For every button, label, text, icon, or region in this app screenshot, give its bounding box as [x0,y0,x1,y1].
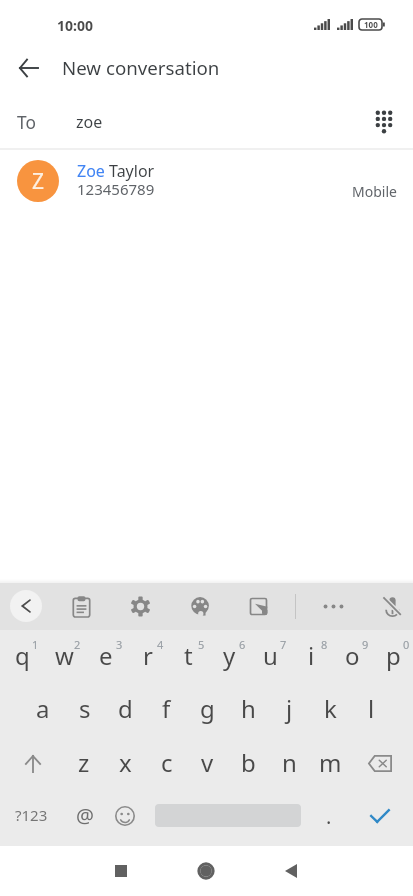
button[interactable]: Themes [183,589,217,623]
button[interactable]: Close keyboard tools [10,590,42,622]
button[interactable]: Z [0,150,413,211]
button[interactable]: b [228,738,269,792]
button[interactable]: a [22,684,64,738]
staticText: To [17,111,36,135]
staticText: 0 [403,637,410,652]
staticText: k [324,692,337,725]
button[interactable]: Back [269,849,313,893]
button[interactable]: To [0,96,413,148]
button[interactable]: g [187,684,228,738]
staticText: r [143,639,153,672]
button[interactable]: c [146,738,187,792]
button[interactable]: @ [65,792,107,846]
button[interactable]: q [0,630,42,684]
button[interactable]: z [63,738,105,792]
staticText: u [263,639,278,672]
staticText: b [241,746,256,779]
button[interactable]: o [331,630,372,684]
button[interactable]: h [228,684,269,738]
staticText: q [15,639,30,672]
staticText: 3 [116,637,123,652]
staticText: l [368,692,375,725]
button[interactable]: u [249,630,290,684]
staticText: 7 [280,637,287,652]
staticText: ?123 [15,805,48,825]
button[interactable]: w [42,630,84,684]
button[interactable]: ?123 [0,792,65,846]
staticText: y [223,639,236,672]
staticText: n [282,746,297,779]
staticText: 100 [364,19,378,30]
button[interactable]: d [105,684,146,738]
button[interactable]: k [310,684,351,738]
staticText: New conversation [62,55,220,80]
staticText: p [386,639,401,672]
button[interactable]: Emoji [104,792,145,846]
staticText: 9 [362,637,369,652]
staticText: Zoe Taylor [77,160,155,182]
staticText: m [319,746,342,779]
staticText: t [184,639,193,672]
button[interactable]: Settings [123,589,157,623]
staticText: 123456789 [77,179,155,199]
staticText: o [345,639,360,672]
button[interactable]: Handwriting [241,589,275,623]
staticText: 10:00 [57,16,93,35]
button[interactable]: Recent apps [99,849,143,893]
staticText: 6 [239,637,246,652]
staticText: j [286,692,293,725]
button[interactable]: Clipboard [64,589,98,623]
button[interactable]: t [167,630,208,684]
button[interactable]: Shift [0,738,63,792]
staticText: f [162,692,171,725]
staticText: 4 [157,637,164,652]
staticText: x [119,746,132,779]
staticText: d [118,692,133,725]
staticText: 8 [321,637,328,652]
button[interactable]: e [84,630,126,684]
button[interactable]: p [372,630,413,684]
staticText: h [241,692,256,725]
button[interactable]: s [64,684,105,738]
button[interactable]: m [310,738,351,792]
button[interactable]: More options [316,589,350,623]
button[interactable]: Home [184,849,228,893]
staticText: a [36,692,50,725]
staticText: 2 [74,637,81,652]
staticText: 5 [198,637,205,652]
staticText: c [161,746,173,779]
button[interactable]: Dialpad [358,96,410,148]
button[interactable]: r [126,630,167,684]
staticText: z [78,746,90,779]
button[interactable]: x [105,738,146,792]
staticText: Mobile [352,182,397,201]
button[interactable]: Space [148,792,308,846]
button[interactable]: Back [0,40,56,96]
staticText: 1 [32,637,39,652]
button[interactable]: Send [350,792,413,846]
staticText: w [55,639,74,672]
staticText: s [79,692,91,725]
staticText: . [326,803,332,830]
staticText: Z [32,167,45,196]
button[interactable]: n [269,738,310,792]
button[interactable]: j [269,684,310,738]
button[interactable]: Voice input off [375,589,409,623]
button[interactable]: f [146,684,187,738]
button[interactable]: i [290,630,331,684]
staticText: e [99,639,113,672]
staticText: i [308,639,315,672]
staticText: g [200,692,215,725]
button[interactable]: y [208,630,249,684]
button[interactable]: l [351,684,392,738]
button[interactable]: . [308,792,349,846]
staticText: v [201,746,214,779]
staticText: @ [76,802,94,829]
button[interactable]: v [187,738,228,792]
staticText: zoe [76,111,103,133]
button[interactable]: Backspace [351,738,413,792]
